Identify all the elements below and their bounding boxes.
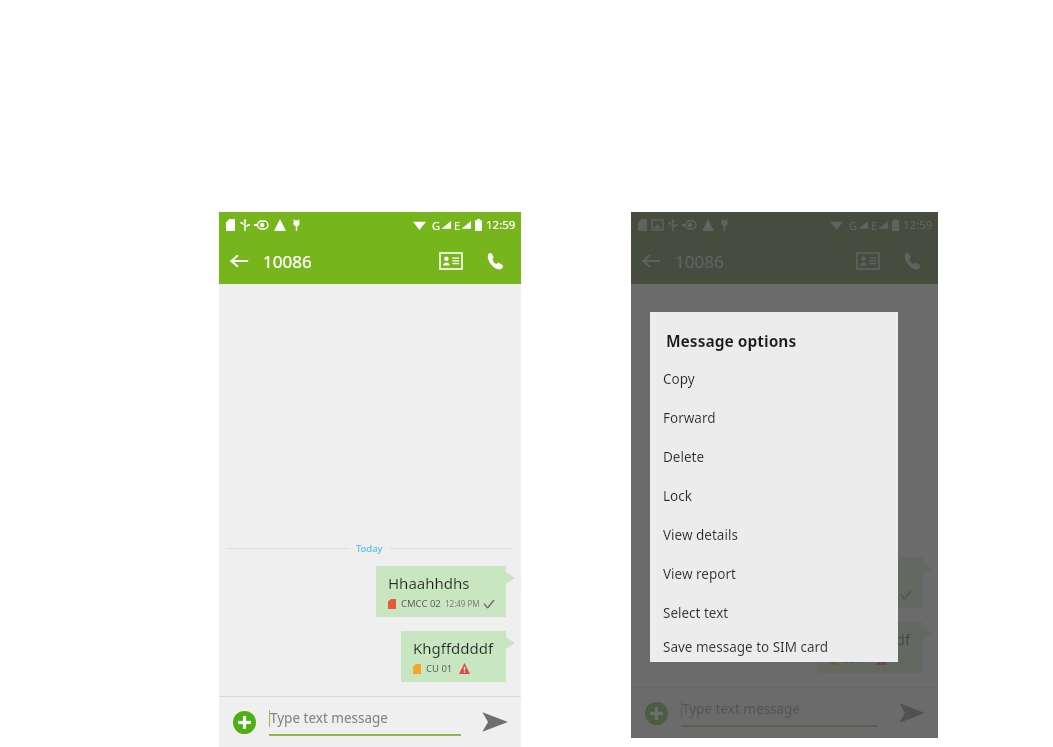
staticText: G (432, 218, 441, 233)
button[interactable]: Khgffddddf (818, 622, 932, 673)
staticText: Today (356, 542, 383, 555)
button[interactable]: Send (892, 694, 930, 732)
staticText: Forward (663, 409, 716, 427)
button[interactable]: Contact details (431, 241, 471, 281)
button[interactable]: Khgffddddf (401, 631, 515, 682)
staticText: CMCC 02 (401, 597, 441, 610)
staticText: Copy (663, 370, 695, 388)
button[interactable]: Delete (650, 437, 898, 476)
staticText: Type text message (682, 700, 800, 718)
staticText: Lock (663, 487, 692, 505)
button[interactable]: Copy (650, 359, 898, 398)
staticText: Delete (663, 448, 705, 466)
staticText: View details (663, 526, 738, 544)
staticText: Khgffddddf (413, 638, 494, 658)
button[interactable]: Forward (650, 398, 898, 437)
button[interactable]: Save message to SIM card (650, 632, 898, 662)
staticText: 12:59 (903, 217, 933, 233)
button[interactable]: Contact details (848, 241, 888, 281)
button[interactable]: Call (892, 241, 932, 281)
staticText: 12:59 (486, 217, 516, 233)
button[interactable]: Lock (650, 476, 898, 515)
staticText: CU 01 (426, 662, 453, 675)
staticText: Hhaahhdhs (388, 573, 470, 593)
staticText: Select text (663, 604, 729, 622)
staticText: Save message to SIM card (663, 638, 829, 656)
button[interactable]: Add attachment (229, 707, 259, 737)
button[interactable]: Send (475, 703, 513, 741)
staticText: 10086 (263, 250, 312, 273)
button[interactable]: View details (650, 515, 898, 554)
staticText: G (849, 218, 858, 233)
button[interactable]: Back (631, 241, 671, 281)
button[interactable]: Add attachment (641, 698, 671, 728)
button[interactable]: Call (475, 241, 515, 281)
staticText: E (871, 218, 878, 233)
button[interactable]: Select text (650, 593, 898, 632)
button[interactable]: View report (650, 554, 898, 593)
staticText: 10086 (675, 250, 724, 273)
staticText: Khgffddddf (830, 629, 911, 649)
staticText: CU 01 (843, 653, 870, 666)
button[interactable]: Hhaahhdhs (376, 566, 515, 617)
button[interactable]: Hhaahhdhs (793, 557, 932, 608)
staticText: 12:49 PM (445, 598, 480, 609)
staticText: Type text message (270, 709, 388, 727)
button[interactable]: Type text message (681, 700, 878, 727)
staticText: E (454, 218, 461, 233)
button[interactable]: Type text message (269, 709, 461, 736)
button[interactable]: Back (219, 241, 259, 281)
staticText: View report (663, 565, 736, 583)
staticText: Message options (666, 330, 797, 351)
